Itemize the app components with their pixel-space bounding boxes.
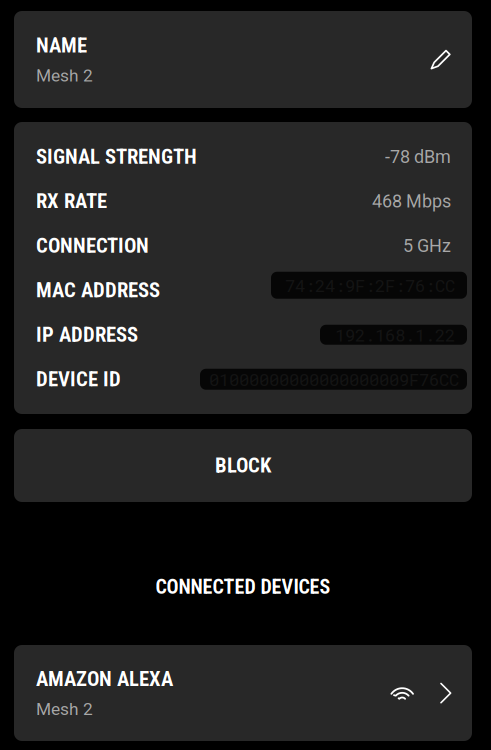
button[interactable]: NAME: [14, 11, 472, 108]
staticText: Mesh 2: [36, 699, 93, 719]
staticText: SIGNAL STRENGTH: [36, 145, 197, 169]
staticText: CONNECTION: [36, 234, 149, 258]
staticText: 74:24:9F:2F:76:CC: [285, 274, 455, 297]
staticText: IP ADDRESS: [36, 323, 138, 347]
button[interactable]: AMAZON ALEXA: [14, 645, 472, 741]
staticText: NAME: [36, 33, 87, 57]
button[interactable]: BLOCK: [14, 429, 472, 502]
staticText: 01000000000000000009F76CC: [209, 368, 459, 391]
staticText: AMAZON ALEXA: [36, 667, 173, 691]
staticText: 468 Mbps: [372, 191, 451, 212]
staticText: DEVICE ID: [36, 367, 121, 391]
staticText: Mesh 2: [36, 65, 93, 86]
staticText: MAC ADDRESS: [36, 278, 160, 302]
staticText: CONNECTED DEVICES: [155, 575, 330, 599]
staticText: 192.168.1.22: [335, 323, 455, 346]
staticText: -78 dBm: [385, 146, 451, 167]
staticText: BLOCK: [215, 453, 271, 478]
staticText: 5 GHz: [403, 235, 451, 256]
staticText: RX RATE: [36, 189, 107, 213]
